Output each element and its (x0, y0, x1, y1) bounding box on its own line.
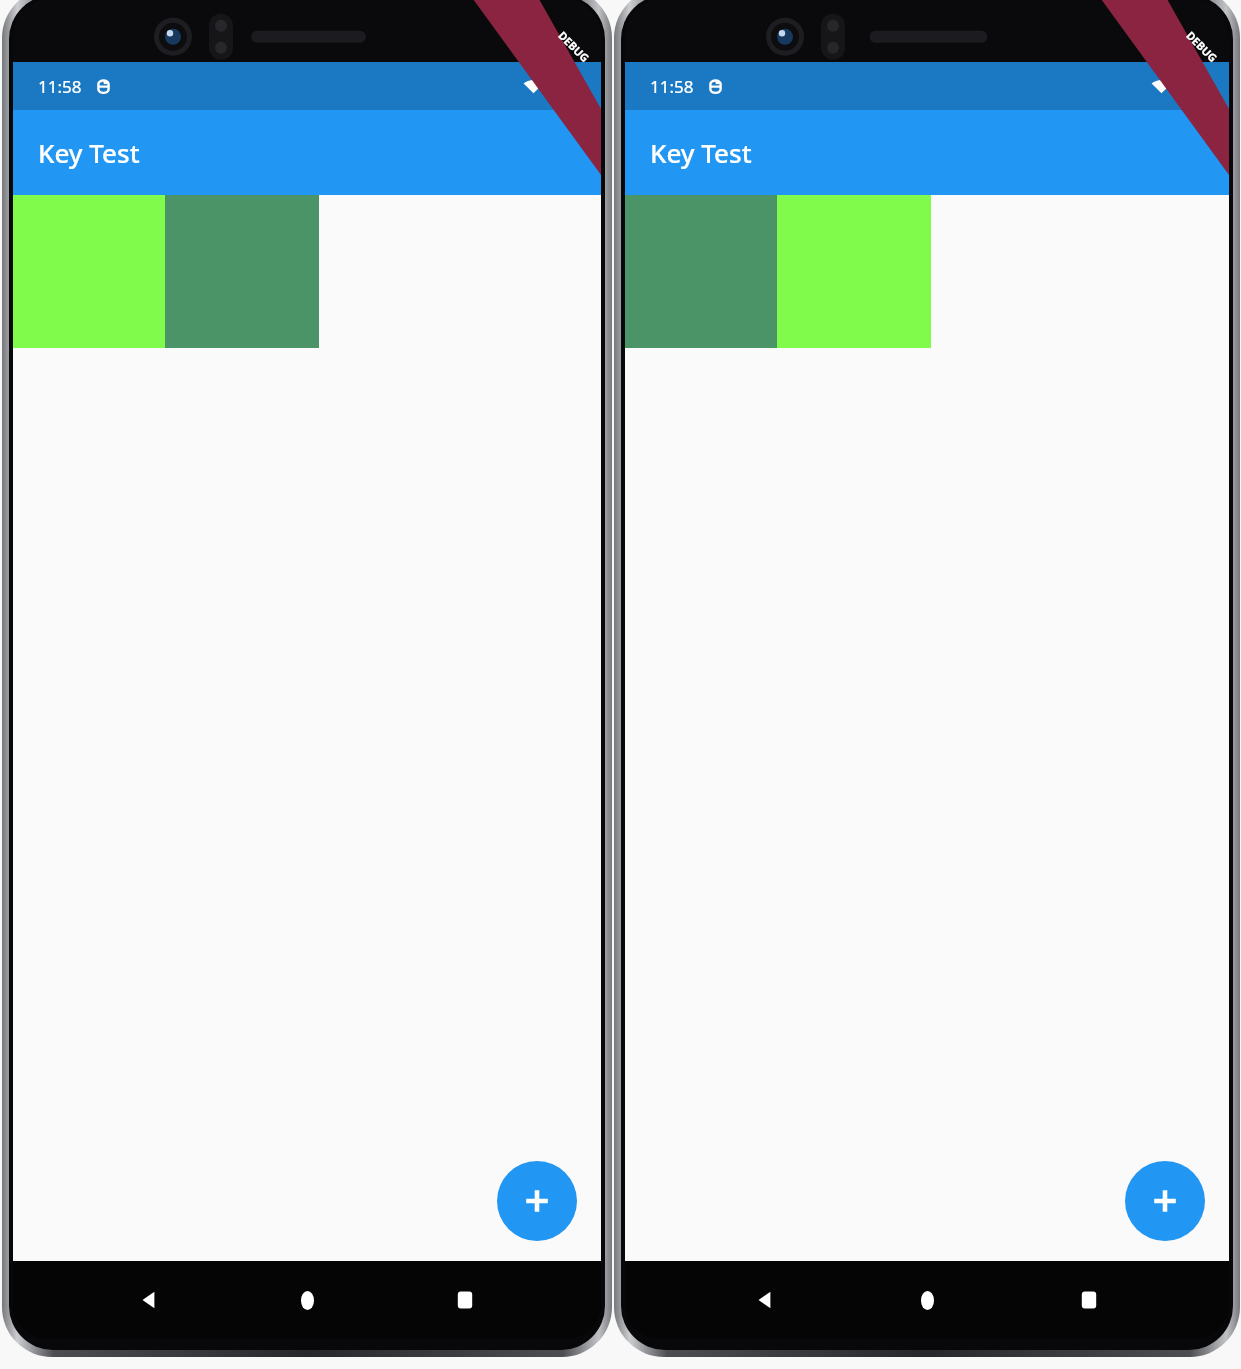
button[interactable]: Recents (444, 1279, 486, 1321)
staticText: DEBUG (555, 28, 593, 65)
staticText: 11:58 (650, 75, 694, 98)
button[interactable]: Add (497, 1161, 577, 1241)
button[interactable]: Recents (1068, 1279, 1110, 1321)
staticText: Key Test (38, 135, 140, 170)
button[interactable]: Add (1125, 1161, 1205, 1241)
button[interactable]: Back (129, 1279, 171, 1321)
staticText: Key Test (650, 135, 752, 170)
button[interactable]: Home (286, 1279, 328, 1321)
button[interactable]: Back (745, 1279, 787, 1321)
staticText: 11:58 (38, 75, 82, 98)
staticText: DEBUG (1183, 28, 1221, 65)
button[interactable]: Home (906, 1279, 948, 1321)
